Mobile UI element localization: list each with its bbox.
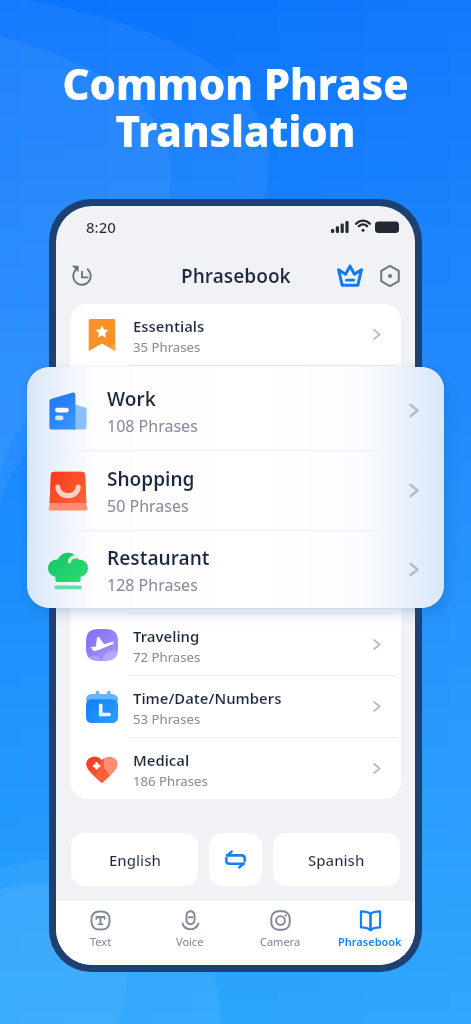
staticText: Text	[90, 934, 112, 949]
staticText: 8:20	[86, 217, 116, 237]
button[interactable]: Work	[27, 371, 444, 450]
button[interactable]: English	[71, 833, 198, 886]
staticText: Camera	[260, 934, 301, 949]
button[interactable]: Traveling	[70, 614, 401, 675]
staticText: Phrasebook	[181, 263, 291, 289]
button[interactable]: History	[61, 255, 103, 297]
staticText: 108 Phrases	[107, 415, 198, 437]
staticText: 186 Phrases	[133, 772, 208, 790]
staticText: Traveling	[133, 626, 200, 646]
staticText: Work	[107, 386, 156, 412]
staticText: Restaurant	[133, 502, 213, 522]
staticText: 64 Phrases	[133, 586, 201, 604]
button[interactable]: Spanish	[273, 833, 400, 886]
staticText: Phrasebook	[338, 934, 402, 949]
button[interactable]: Premium	[330, 256, 370, 296]
staticText: Spanish	[308, 850, 365, 870]
staticText: Restaurant	[107, 545, 210, 571]
staticText: Shopping	[107, 466, 195, 492]
button[interactable]: Time/Date/Numbers	[70, 676, 401, 737]
staticText: 53 Phrases	[133, 710, 201, 728]
staticText: Medical	[133, 750, 190, 770]
staticText: 128 Phrases	[133, 524, 208, 542]
staticText: Work	[133, 378, 172, 398]
staticText: Time/Date/Numbers	[133, 688, 282, 708]
staticText: 50 Phrases	[133, 462, 201, 480]
staticText: 35 Phrases	[133, 338, 201, 356]
staticText: 128 Phrases	[107, 574, 198, 596]
button[interactable]: Shopping	[70, 428, 401, 489]
staticText: Shopping	[133, 440, 202, 460]
staticText: Entertainment	[133, 564, 239, 584]
staticText: English	[109, 850, 161, 870]
button[interactable]: Text	[56, 901, 145, 965]
button[interactable]: Camera	[235, 901, 325, 965]
button[interactable]: Restaurant	[27, 531, 444, 608]
button[interactable]: Shopping	[27, 451, 444, 530]
button[interactable]: Essentials	[70, 304, 401, 365]
button[interactable]: Swap languages	[209, 833, 262, 886]
staticText: 72 Phrases	[133, 648, 201, 666]
staticText: 50 Phrases	[107, 495, 189, 517]
staticText: Common Phrase Translation	[0, 55, 471, 159]
button[interactable]: Entertainment	[70, 552, 401, 613]
staticText: Voice	[176, 934, 204, 949]
button[interactable]: Medical	[70, 738, 401, 799]
button[interactable]: Settings	[370, 256, 410, 296]
button[interactable]: Work	[70, 366, 401, 427]
button[interactable]: Phrasebook	[325, 901, 415, 965]
button[interactable]: Restaurant	[70, 490, 401, 551]
button[interactable]: Voice	[145, 901, 235, 965]
staticText: Essentials	[133, 316, 205, 336]
staticText: 108 Phrases	[133, 400, 208, 418]
